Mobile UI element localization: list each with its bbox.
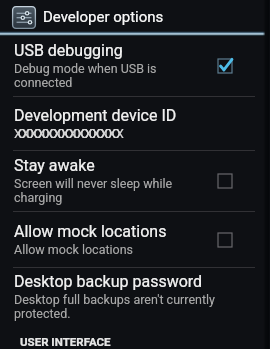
staticText: Allow mock locations (14, 242, 134, 257)
staticText: O0O0O0O0O0O0O (18, 126, 121, 141)
staticText: Screen will never sleep while charging (14, 176, 204, 206)
staticText: USER INTERFACE (20, 335, 111, 348)
staticText: XXXXXXXXXXXXXX (14, 126, 124, 141)
button[interactable]: Allow mock locations (0, 212, 270, 267)
other: Developer options (12, 6, 36, 29)
button[interactable]: Stay awake (0, 151, 270, 211)
staticText: Allow mock locations (14, 222, 167, 241)
button[interactable]: Toggle setting (213, 169, 237, 193)
staticText: Stay awake (14, 156, 95, 175)
staticText: Development device ID (14, 106, 177, 125)
staticText: Debug mode when USB is connected (14, 61, 204, 91)
staticText: Desktop backup password (14, 272, 203, 291)
staticText: Developer options (43, 8, 164, 26)
button[interactable]: Desktop backup password (0, 268, 270, 325)
staticText: Desktop full backups aren't currently pr… (14, 292, 256, 322)
button[interactable]: USER INTERFACE (20, 335, 270, 348)
button[interactable]: Toggle setting (213, 228, 237, 252)
button[interactable]: Development device ID (0, 97, 270, 150)
button[interactable]: Developer options (0, 0, 270, 34)
button[interactable]: Toggle setting (213, 54, 237, 78)
button[interactable]: USB debugging (0, 36, 270, 96)
staticText: USB debugging (14, 41, 123, 60)
